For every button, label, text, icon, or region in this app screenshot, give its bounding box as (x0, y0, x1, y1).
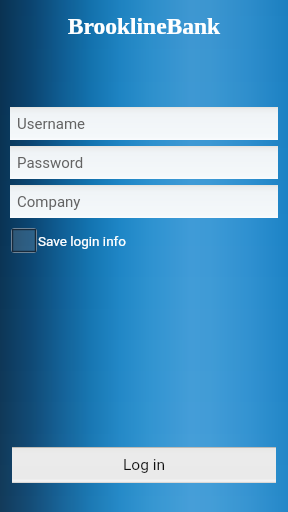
staticText: Company (17, 193, 81, 211)
staticText: Username (17, 115, 86, 133)
button[interactable]: Username (10, 107, 278, 140)
staticText: Save login info (38, 233, 127, 249)
staticText: BrooklineBank (0, 13, 288, 39)
staticText: Password (17, 154, 84, 172)
staticText: Log in (123, 456, 166, 474)
button[interactable]: Log in (12, 447, 276, 483)
button[interactable]: Company (10, 185, 278, 218)
button[interactable]: Password (10, 146, 278, 179)
button[interactable]: Save login info (11, 228, 127, 253)
